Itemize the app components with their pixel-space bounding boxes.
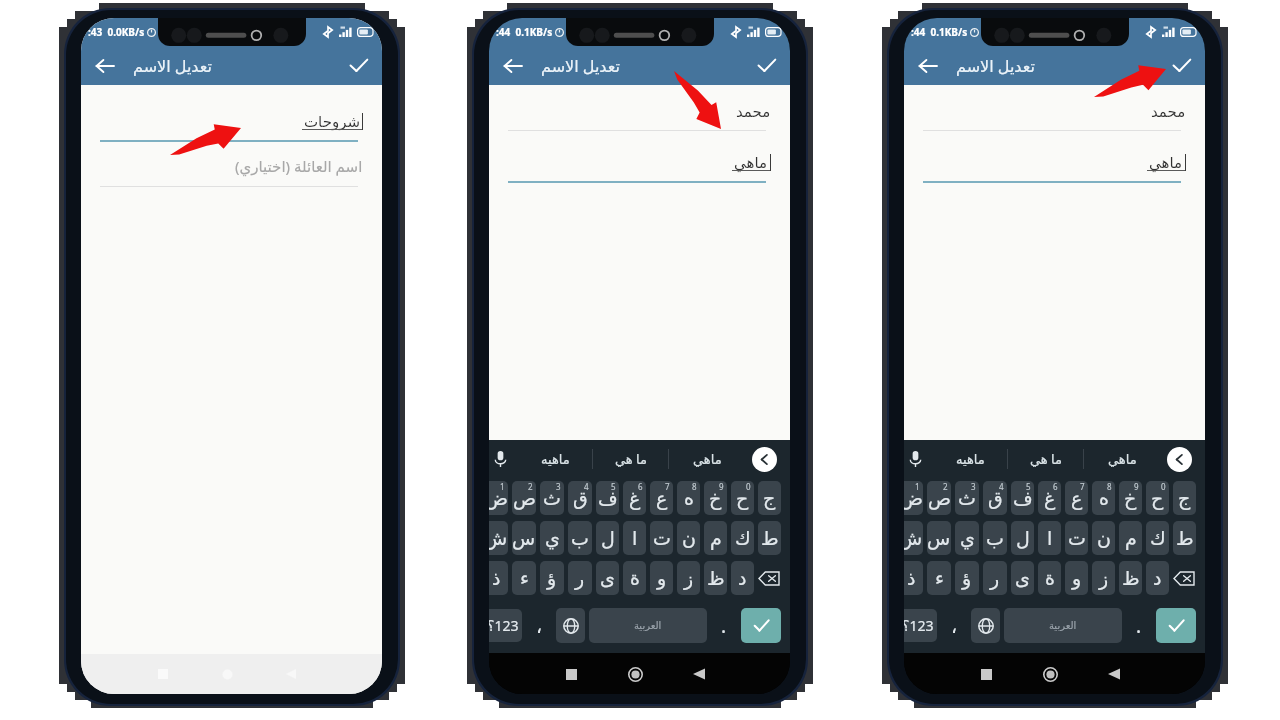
button[interactable]: Voice input: [904, 440, 933, 478]
button[interactable]: د: [731, 561, 754, 595]
button[interactable]: Backspace: [1173, 560, 1196, 596]
button[interactable]: ،: [526, 609, 552, 642]
button[interactable]: ر: [568, 561, 592, 595]
button[interactable]: ف: [596, 481, 619, 515]
button[interactable]: ه: [677, 481, 700, 515]
button[interactable]: ن: [677, 521, 700, 555]
button[interactable]: ء: [512, 561, 536, 595]
button[interactable]: Change language: [971, 608, 1000, 643]
button[interactable]: ز: [677, 561, 700, 595]
button[interactable]: ك: [731, 521, 754, 555]
button[interactable]: ة: [1038, 561, 1061, 595]
button[interactable]: م: [1119, 521, 1142, 555]
button[interactable]: ع: [650, 481, 673, 515]
button[interactable]: Enter: [1156, 608, 1196, 643]
button[interactable]: ف: [1011, 481, 1034, 515]
button[interactable]: العربية: [1004, 608, 1122, 643]
button[interactable]: Backspace: [758, 560, 781, 596]
button[interactable]: م: [704, 521, 727, 555]
button[interactable]: ج: [1173, 481, 1196, 515]
button[interactable]: ر: [983, 561, 1007, 595]
button[interactable]: ق: [983, 481, 1007, 515]
button[interactable]: و: [650, 561, 673, 595]
button[interactable]: ل: [596, 521, 619, 555]
button[interactable]: Home: [1036, 660, 1064, 688]
button[interactable]: ج: [758, 481, 781, 515]
button[interactable]: ع: [1065, 481, 1088, 515]
button[interactable]: Back: [489, 46, 537, 85]
button[interactable]: ز: [1092, 561, 1115, 595]
button[interactable]: ؤ: [955, 561, 979, 595]
button[interactable]: ش: [904, 521, 923, 555]
button[interactable]: ى: [596, 561, 619, 595]
button[interactable]: و: [1065, 561, 1088, 595]
button[interactable]: Back: [904, 46, 952, 85]
button[interactable]: ‭؟123‬: [904, 609, 937, 642]
button[interactable]: ا: [623, 521, 646, 555]
button[interactable]: .: [1126, 609, 1152, 642]
button[interactable]: العربية: [589, 608, 707, 643]
button[interactable]: Back: [81, 46, 129, 85]
button[interactable]: ق: [568, 481, 592, 515]
button[interactable]: Recents: [557, 660, 585, 688]
button[interactable]: Save: [742, 46, 790, 85]
button[interactable]: ظ: [1119, 561, 1142, 595]
button[interactable]: Save: [334, 46, 382, 85]
button[interactable]: ل: [1011, 521, 1034, 555]
button[interactable]: ذ: [489, 561, 508, 595]
button[interactable]: ا: [1038, 521, 1061, 555]
button[interactable]: ب: [983, 521, 1007, 555]
button[interactable]: ى: [1011, 561, 1034, 595]
button[interactable]: س: [927, 521, 951, 555]
button[interactable]: ه: [1092, 481, 1115, 515]
button[interactable]: ماهيه: [518, 440, 593, 478]
button[interactable]: ك: [1146, 521, 1169, 555]
button[interactable]: ت: [1065, 521, 1088, 555]
button[interactable]: غ: [623, 481, 646, 515]
button[interactable]: Save: [1157, 46, 1205, 85]
button[interactable]: Voice input: [489, 440, 518, 478]
button[interactable]: Back: [685, 660, 713, 688]
button[interactable]: ما هي: [593, 440, 669, 478]
button[interactable]: ص: [512, 481, 536, 515]
button[interactable]: Recents: [149, 660, 177, 688]
button[interactable]: غ: [1038, 481, 1061, 515]
button[interactable]: ض: [904, 481, 923, 515]
button[interactable]: Recents: [972, 660, 1000, 688]
button[interactable]: ح: [1146, 481, 1169, 515]
button[interactable]: Change language: [556, 608, 585, 643]
button[interactable]: .: [711, 609, 737, 642]
button[interactable]: ث: [540, 481, 564, 515]
button[interactable]: ماهيه: [933, 440, 1008, 478]
button[interactable]: ض: [489, 481, 508, 515]
button[interactable]: ظ: [704, 561, 727, 595]
button[interactable]: ذ: [904, 561, 923, 595]
button[interactable]: Expand suggestions: [745, 440, 783, 478]
button[interactable]: ي: [540, 521, 564, 555]
button[interactable]: ب: [568, 521, 592, 555]
button[interactable]: س: [512, 521, 536, 555]
button[interactable]: ط: [1173, 521, 1196, 555]
button[interactable]: ص: [927, 481, 951, 515]
button[interactable]: ماهي: [1084, 440, 1160, 478]
button[interactable]: ء: [927, 561, 951, 595]
button[interactable]: ؤ: [540, 561, 564, 595]
button[interactable]: خ: [1119, 481, 1142, 515]
button[interactable]: ماهي: [669, 440, 745, 478]
button[interactable]: ش: [489, 521, 508, 555]
button[interactable]: ث: [955, 481, 979, 515]
button[interactable]: ي: [955, 521, 979, 555]
button[interactable]: Home: [621, 660, 649, 688]
button[interactable]: ة: [623, 561, 646, 595]
button[interactable]: ط: [758, 521, 781, 555]
button[interactable]: Enter: [741, 608, 781, 643]
button[interactable]: خ: [704, 481, 727, 515]
button[interactable]: Back: [1100, 660, 1128, 688]
button[interactable]: ‭؟123‬: [489, 609, 522, 642]
button[interactable]: ت: [650, 521, 673, 555]
button[interactable]: د: [1146, 561, 1169, 595]
button[interactable]: ح: [731, 481, 754, 515]
button[interactable]: ،: [941, 609, 967, 642]
